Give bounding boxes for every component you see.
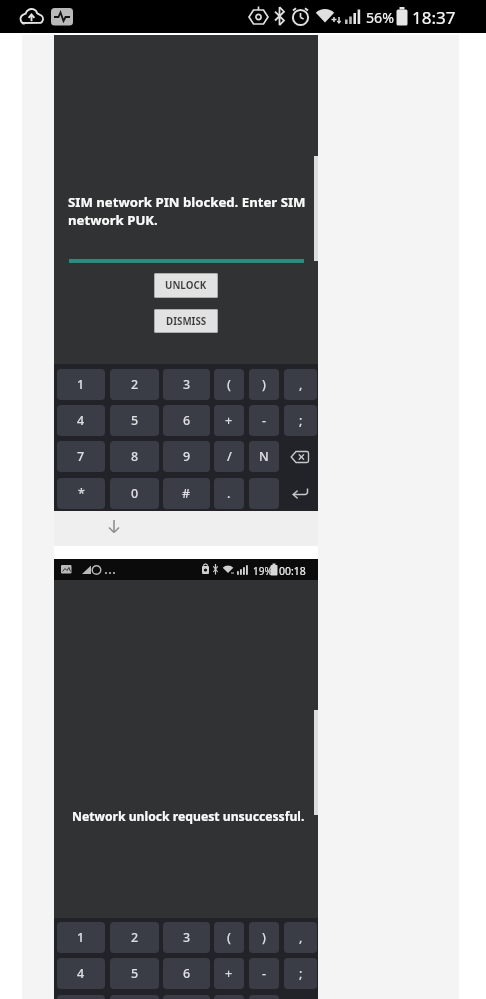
staticText: DISMISS: [166, 315, 207, 328]
staticText: 9: [183, 448, 191, 465]
staticText: 19%: [253, 564, 273, 578]
staticText: 3: [183, 376, 191, 393]
button[interactable]: [290, 450, 310, 464]
button[interactable]: 1: [57, 369, 105, 400]
button[interactable]: 9: [163, 441, 210, 472]
button[interactable]: 4: [57, 958, 105, 989]
staticText: ): [262, 929, 266, 946]
button[interactable]: ,: [284, 369, 317, 400]
button[interactable]: 5: [110, 405, 159, 436]
button[interactable]: 3: [163, 369, 210, 400]
button[interactable]: 7: [57, 441, 105, 472]
staticText: #: [182, 485, 191, 502]
staticText: +: [225, 412, 233, 429]
button[interactable]: [290, 486, 309, 500]
staticText: Network unlock request unsuccessful.: [72, 808, 305, 825]
button[interactable]: 0: [110, 478, 159, 509]
button[interactable]: N: [249, 441, 279, 472]
button[interactable]: 5: [110, 958, 159, 989]
button[interactable]: ;: [284, 958, 317, 989]
staticText: 1: [77, 929, 85, 946]
staticText: -: [262, 412, 267, 429]
button[interactable]: UNLOCK: [154, 273, 218, 298]
button[interactable]: 2: [110, 369, 159, 400]
staticText: 56%: [366, 8, 395, 27]
button[interactable]: DISMISS: [154, 309, 218, 333]
button[interactable]: 2: [110, 922, 159, 953]
button[interactable]: /: [214, 441, 244, 472]
staticText: 7: [77, 448, 85, 465]
button[interactable]: *: [57, 478, 105, 509]
staticText: 2: [131, 929, 139, 946]
staticText: SIM network PIN blocked. Enter SIM netwo…: [68, 193, 306, 229]
staticText: (: [227, 376, 231, 393]
staticText: 1: [77, 376, 85, 393]
staticText: ): [262, 376, 266, 393]
staticText: 2: [131, 376, 139, 393]
button[interactable]: -: [249, 405, 279, 436]
button[interactable]: 3: [163, 922, 210, 953]
button[interactable]: (: [214, 922, 244, 953]
button[interactable]: 8: [110, 441, 159, 472]
button[interactable]: (: [214, 369, 244, 400]
staticText: 5: [131, 965, 139, 982]
staticText: 0: [131, 485, 139, 502]
staticText: UNLOCK: [165, 279, 207, 292]
button[interactable]: /: [214, 995, 244, 999]
staticText: 00:18: [279, 564, 306, 578]
button[interactable]: +: [214, 958, 244, 989]
staticText: -: [262, 965, 267, 982]
button[interactable]: 7: [57, 995, 105, 999]
staticText: 5: [131, 412, 139, 429]
staticText: .: [227, 485, 231, 502]
button[interactable]: ;: [284, 405, 317, 436]
button[interactable]: .: [214, 478, 244, 509]
button[interactable]: 1: [57, 922, 105, 953]
staticText: 6: [183, 412, 191, 429]
staticText: 18:37: [412, 6, 456, 29]
button[interactable]: 6: [163, 958, 210, 989]
button[interactable]: ): [249, 369, 279, 400]
staticText: 4: [77, 965, 85, 982]
staticText: ,: [299, 929, 303, 946]
staticText: *: [78, 485, 85, 502]
button[interactable]: +: [214, 405, 244, 436]
button[interactable]: 4: [57, 405, 105, 436]
staticText: 4: [77, 412, 85, 429]
button[interactable]: ): [249, 922, 279, 953]
button[interactable]: 9: [163, 995, 210, 999]
staticText: 6: [183, 965, 191, 982]
button[interactable]: N: [249, 995, 279, 999]
button[interactable]: 6: [163, 405, 210, 436]
staticText: 8: [131, 448, 139, 465]
staticText: (: [227, 929, 231, 946]
button[interactable]: 8: [110, 995, 159, 999]
staticText: +: [225, 965, 233, 982]
button[interactable]: ,: [284, 922, 317, 953]
staticText: ;: [299, 412, 303, 429]
button[interactable]: -: [249, 958, 279, 989]
staticText: /: [227, 448, 232, 465]
button[interactable]: #: [163, 478, 210, 509]
staticText: 3: [183, 929, 191, 946]
staticText: N: [259, 448, 269, 465]
staticText: ;: [299, 965, 303, 982]
staticText: ,: [299, 376, 303, 393]
